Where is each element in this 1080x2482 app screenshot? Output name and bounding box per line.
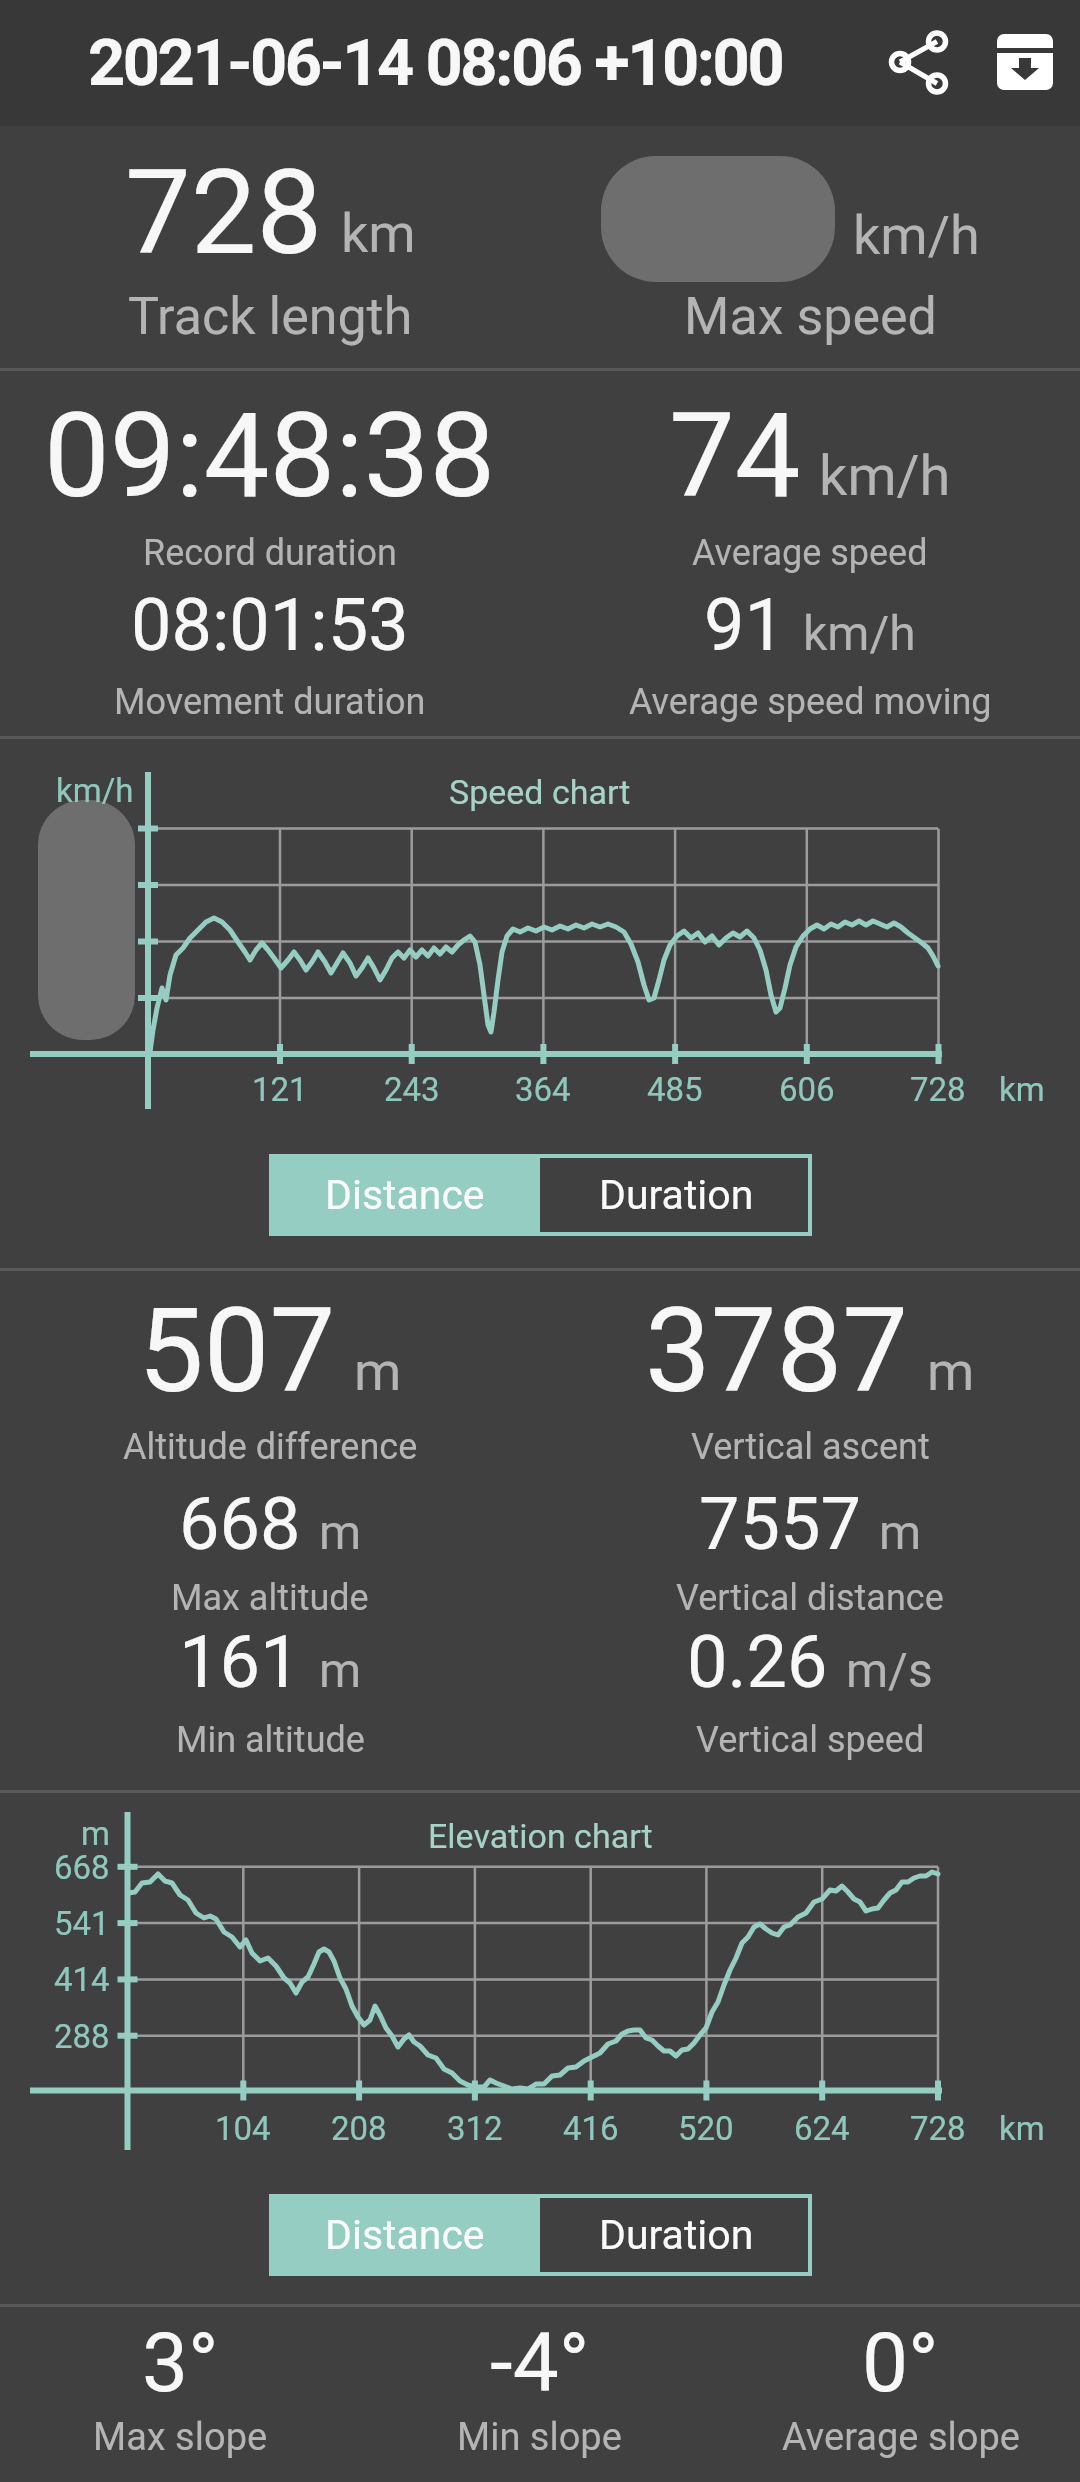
- staticText: 74: [669, 387, 801, 524]
- staticText: m: [927, 1340, 975, 1403]
- staticText: 288: [54, 2017, 110, 2056]
- staticText: Duration: [599, 2211, 754, 2259]
- staticText: km/h: [853, 204, 980, 267]
- staticText: 312: [447, 2109, 503, 2148]
- staticText: 3787: [645, 1282, 909, 1419]
- staticText: km/h: [56, 771, 134, 810]
- button[interactable]: [977, 13, 1077, 113]
- button[interactable]: Distance: [269, 1154, 540, 1236]
- staticText: Speed chart: [449, 772, 631, 812]
- staticText: 243: [384, 1070, 440, 1109]
- staticText: 668: [179, 1482, 301, 1566]
- staticText: Track length: [128, 286, 413, 347]
- staticText: Movement duration: [114, 681, 426, 723]
- staticText: Altitude difference: [123, 1426, 418, 1468]
- staticText: km/h: [803, 605, 916, 661]
- staticText: 7557: [699, 1482, 861, 1566]
- staticText: 606: [779, 1070, 835, 1109]
- staticText: 09:48:38: [44, 387, 496, 524]
- staticText: 104: [215, 2109, 271, 2148]
- staticText: Distance: [325, 2211, 485, 2259]
- staticText: 121: [252, 1070, 308, 1109]
- staticText: m: [879, 1504, 922, 1560]
- staticText: 208: [331, 2109, 387, 2148]
- staticText: 728: [910, 1070, 966, 1109]
- staticText: m: [319, 1504, 362, 1560]
- staticText: km: [341, 202, 416, 265]
- staticText: Vertical distance: [676, 1577, 944, 1619]
- staticText: 624: [794, 2109, 850, 2148]
- staticText: km/h: [819, 443, 951, 509]
- staticText: Distance: [325, 1171, 485, 1219]
- staticText: Vertical ascent: [691, 1426, 930, 1468]
- staticText: 416: [563, 2109, 619, 2148]
- staticText: Min altitude: [176, 1719, 365, 1761]
- staticText: 91: [704, 583, 785, 667]
- staticText: 541: [54, 1904, 110, 1943]
- staticText: Min slope: [457, 2415, 622, 2460]
- staticText: 0.26: [687, 1620, 828, 1704]
- staticText: m/s: [846, 1642, 933, 1698]
- staticText: km: [999, 1070, 1045, 1109]
- staticText: 161: [179, 1620, 301, 1704]
- staticText: Average slope: [782, 2415, 1020, 2460]
- button[interactable]: Duration: [540, 1154, 812, 1236]
- staticText: m: [354, 1340, 402, 1403]
- staticText: Max altitude: [171, 1577, 369, 1619]
- staticText: Duration: [599, 1171, 754, 1219]
- staticText: Max slope: [93, 2415, 268, 2460]
- staticText: 507: [138, 1282, 336, 1419]
- staticText: Elevation chart: [428, 1816, 653, 1856]
- button[interactable]: Duration: [540, 2194, 812, 2276]
- staticText: 08:01:53: [131, 583, 409, 667]
- staticText: Max speed: [684, 286, 937, 347]
- staticText: 728: [910, 2109, 966, 2148]
- staticText: 728: [125, 144, 323, 281]
- staticText: 414: [54, 1960, 110, 1999]
- staticText: 668: [54, 1848, 110, 1887]
- staticText: Average speed moving: [629, 681, 992, 723]
- button[interactable]: [870, 13, 970, 113]
- staticText: m: [81, 1814, 110, 1853]
- staticText: 364: [515, 1070, 571, 1109]
- button[interactable]: Distance: [269, 2194, 540, 2276]
- staticText: m: [319, 1642, 362, 1698]
- staticText: Average speed: [692, 532, 928, 574]
- staticText: km: [999, 2109, 1045, 2148]
- staticText: Record duration: [143, 532, 397, 574]
- staticText: 0°: [862, 2315, 939, 2411]
- staticText: 520: [678, 2109, 734, 2148]
- staticText: Vertical speed: [696, 1719, 925, 1761]
- staticText: 2021-06-14 08:06 +10:00: [88, 25, 783, 101]
- staticText: -4°: [490, 2315, 590, 2411]
- staticText: 3°: [142, 2315, 219, 2411]
- staticText: 485: [647, 1070, 703, 1109]
